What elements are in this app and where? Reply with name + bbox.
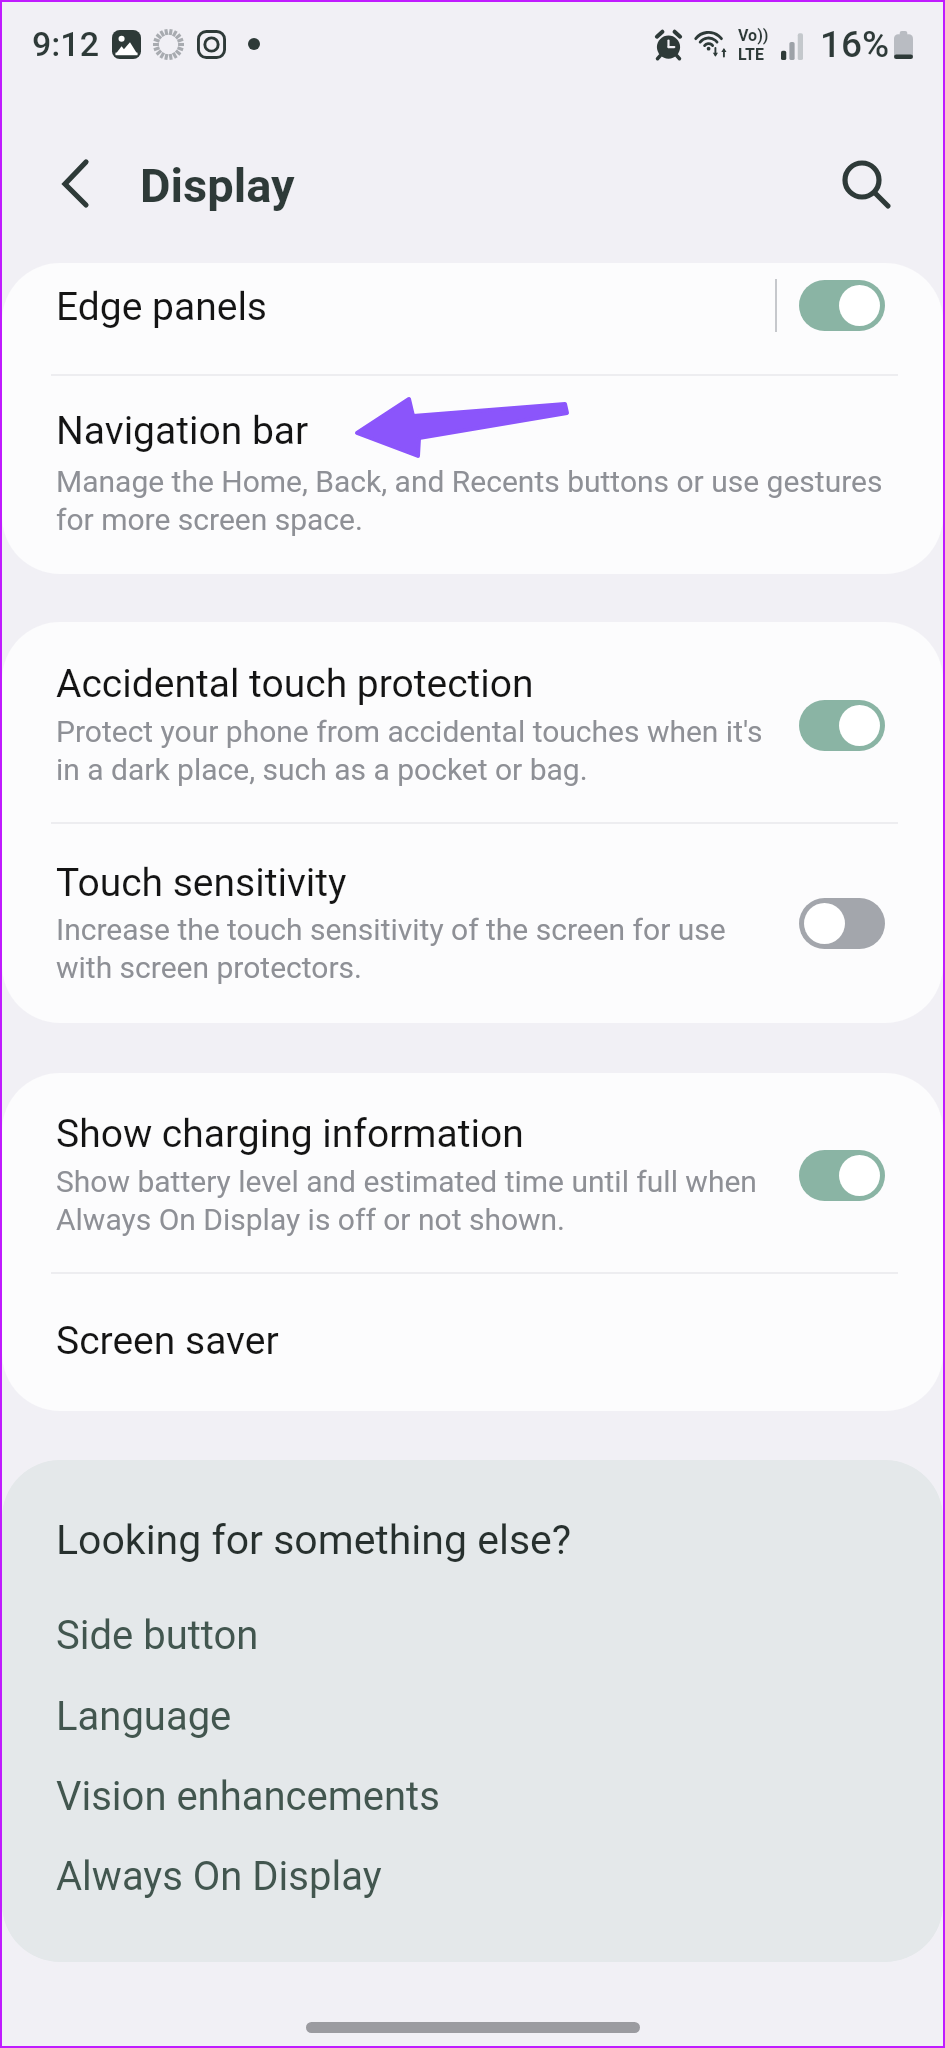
button[interactable]: Search	[822, 140, 904, 222]
button[interactable]: Switch on	[799, 700, 885, 751]
staticText: Accidental touch protection	[56, 661, 534, 707]
staticText: Side button	[56, 1612, 259, 1659]
staticText: Navigation bar	[56, 408, 309, 454]
button[interactable]: Vision enhancements	[2, 1773, 943, 1820]
staticText: Display	[140, 158, 295, 213]
staticText: Protect your phone from accidental touch…	[56, 712, 763, 788]
staticText: Screen saver	[56, 1318, 279, 1364]
staticText: Always On Display	[56, 1853, 382, 1900]
staticText: 16%	[820, 23, 890, 66]
button[interactable]: Edge panels	[2, 284, 943, 330]
button[interactable]: Show charging information	[2, 1111, 943, 1157]
staticText: Edge panels	[56, 284, 267, 330]
staticText: 9:12	[32, 24, 99, 64]
button[interactable]: Screen saver	[2, 1318, 943, 1364]
staticText: Vo))	[738, 26, 769, 45]
button[interactable]: Always On Display	[2, 1853, 943, 1900]
button[interactable]: Accidental touch protection	[2, 661, 943, 707]
button[interactable]: Switch on	[799, 280, 885, 331]
button[interactable]: Switch off	[799, 898, 885, 949]
staticText: Touch sensitivity	[56, 860, 347, 906]
button[interactable]: Side button	[2, 1612, 943, 1659]
staticText: Looking for something else?	[56, 1516, 572, 1564]
button[interactable]: Touch sensitivity	[2, 860, 943, 906]
staticText: Show charging information	[56, 1111, 524, 1157]
button[interactable]: Navigate up	[27, 145, 105, 223]
staticText: LTE	[738, 45, 764, 64]
staticText: Manage the Home, Back, and Recents butto…	[56, 462, 883, 538]
button[interactable]: Switch on	[799, 1150, 885, 1201]
staticText: Language	[56, 1693, 232, 1740]
button[interactable]: Language	[2, 1693, 943, 1740]
button[interactable]: Navigation bar	[2, 408, 943, 454]
staticText: Show battery level and estimated time un…	[56, 1162, 757, 1238]
staticText: Vision enhancements	[56, 1773, 440, 1820]
staticText: Increase the touch sensitivity of the sc…	[56, 910, 726, 986]
